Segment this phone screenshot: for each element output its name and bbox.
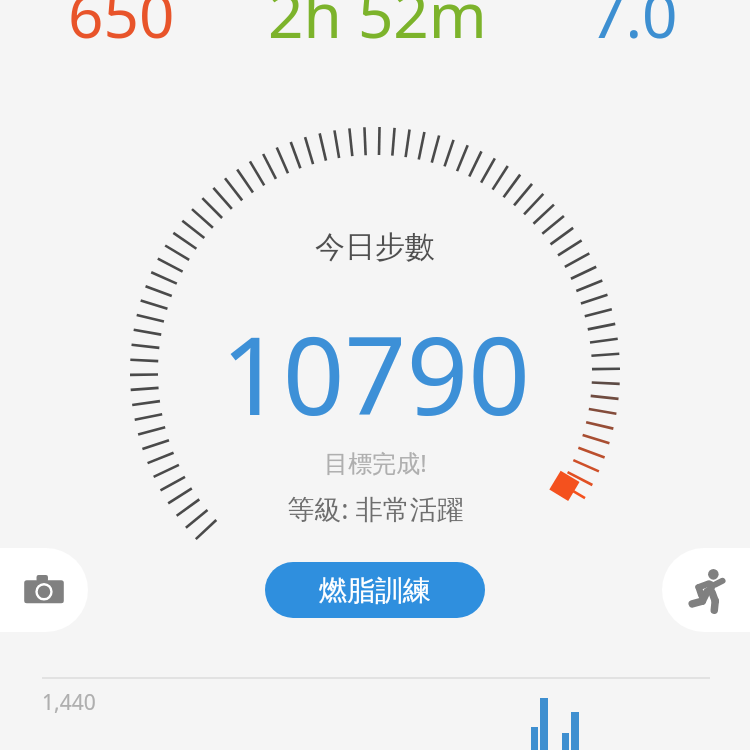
button[interactable]: Start run (662, 548, 750, 632)
button[interactable]: 650 (68, 0, 175, 56)
button[interactable]: 2h 52m (268, 0, 487, 56)
staticText: 10790 (221, 300, 530, 420)
button[interactable]: 燃脂訓練 (265, 562, 485, 618)
button[interactable]: 7.0 (590, 0, 678, 56)
staticText: 等級: 非常活躍 (287, 490, 464, 524)
staticText: 1,440 (42, 688, 96, 717)
staticText: 燃脂訓練 (319, 573, 431, 608)
button[interactable]: Camera (0, 548, 88, 632)
staticText: 目標完成! (324, 446, 427, 476)
staticText: 今日步數 (315, 228, 435, 262)
